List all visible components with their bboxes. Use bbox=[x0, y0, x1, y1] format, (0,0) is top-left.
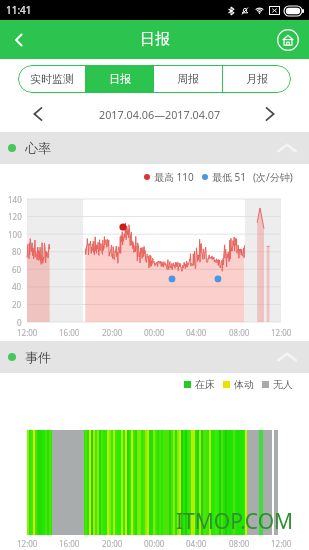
button[interactable]: 周报 bbox=[154, 65, 222, 93]
staticText: (次/分钟) bbox=[253, 170, 293, 184]
button[interactable]: 事件 bbox=[0, 341, 309, 373]
staticText: 12:00 bbox=[17, 538, 38, 549]
staticText: 体动 bbox=[234, 378, 254, 391]
staticText: 无人 bbox=[273, 378, 293, 391]
other: Collapse bbox=[277, 347, 297, 367]
staticText: 在床 bbox=[195, 378, 215, 391]
staticText: 日报 bbox=[140, 30, 170, 49]
staticText: 80 bbox=[12, 246, 22, 257]
button[interactable]: Next day bbox=[255, 99, 285, 129]
staticText: 08:00 bbox=[229, 327, 250, 338]
staticText: 04:00 bbox=[186, 538, 207, 549]
staticText: 12:00 bbox=[17, 327, 38, 338]
staticText: 100 bbox=[8, 229, 22, 240]
button[interactable]: 日报 bbox=[86, 65, 153, 93]
staticText: 00:00 bbox=[144, 327, 165, 338]
staticText: 12:00 bbox=[271, 538, 292, 549]
staticText: 2017.04.06—2017.04.07 bbox=[99, 107, 221, 122]
staticText: 60 bbox=[12, 264, 22, 275]
button[interactable]: Back bbox=[0, 21, 38, 59]
staticText: 20 bbox=[12, 299, 22, 310]
staticText: 11:41 bbox=[6, 3, 32, 17]
staticText: 16:00 bbox=[59, 327, 80, 338]
staticText: 最低 51 bbox=[212, 170, 247, 184]
staticText: 04:00 bbox=[186, 327, 207, 338]
button[interactable]: 月报 bbox=[223, 65, 291, 93]
staticText: 20:00 bbox=[102, 538, 123, 549]
staticText: 16:00 bbox=[59, 538, 80, 549]
staticText: 事件 bbox=[25, 349, 51, 365]
staticText: ITMOP.COM bbox=[176, 507, 294, 536]
staticText: 心率 bbox=[25, 140, 51, 156]
button[interactable]: Home bbox=[273, 25, 303, 55]
staticText: 40 bbox=[12, 281, 22, 292]
staticText: 周报 bbox=[177, 72, 199, 86]
staticText: 最高 110 bbox=[154, 170, 194, 184]
staticText: 实时监测 bbox=[30, 72, 74, 86]
button[interactable]: 心率 bbox=[0, 132, 309, 164]
staticText: 12:00 bbox=[271, 327, 292, 338]
staticText: 00:00 bbox=[144, 538, 165, 549]
staticText: 0 bbox=[17, 317, 22, 328]
button[interactable]: 实时监测 bbox=[18, 65, 85, 93]
staticText: 日报 bbox=[109, 72, 131, 86]
staticText: 120 bbox=[8, 211, 22, 222]
staticText: 月报 bbox=[246, 72, 268, 86]
staticText: 20:00 bbox=[102, 327, 123, 338]
button[interactable]: Previous day bbox=[23, 99, 53, 129]
other: Collapse bbox=[277, 138, 297, 158]
staticText: 140 bbox=[8, 194, 22, 205]
staticText: 08:00 bbox=[229, 538, 250, 549]
